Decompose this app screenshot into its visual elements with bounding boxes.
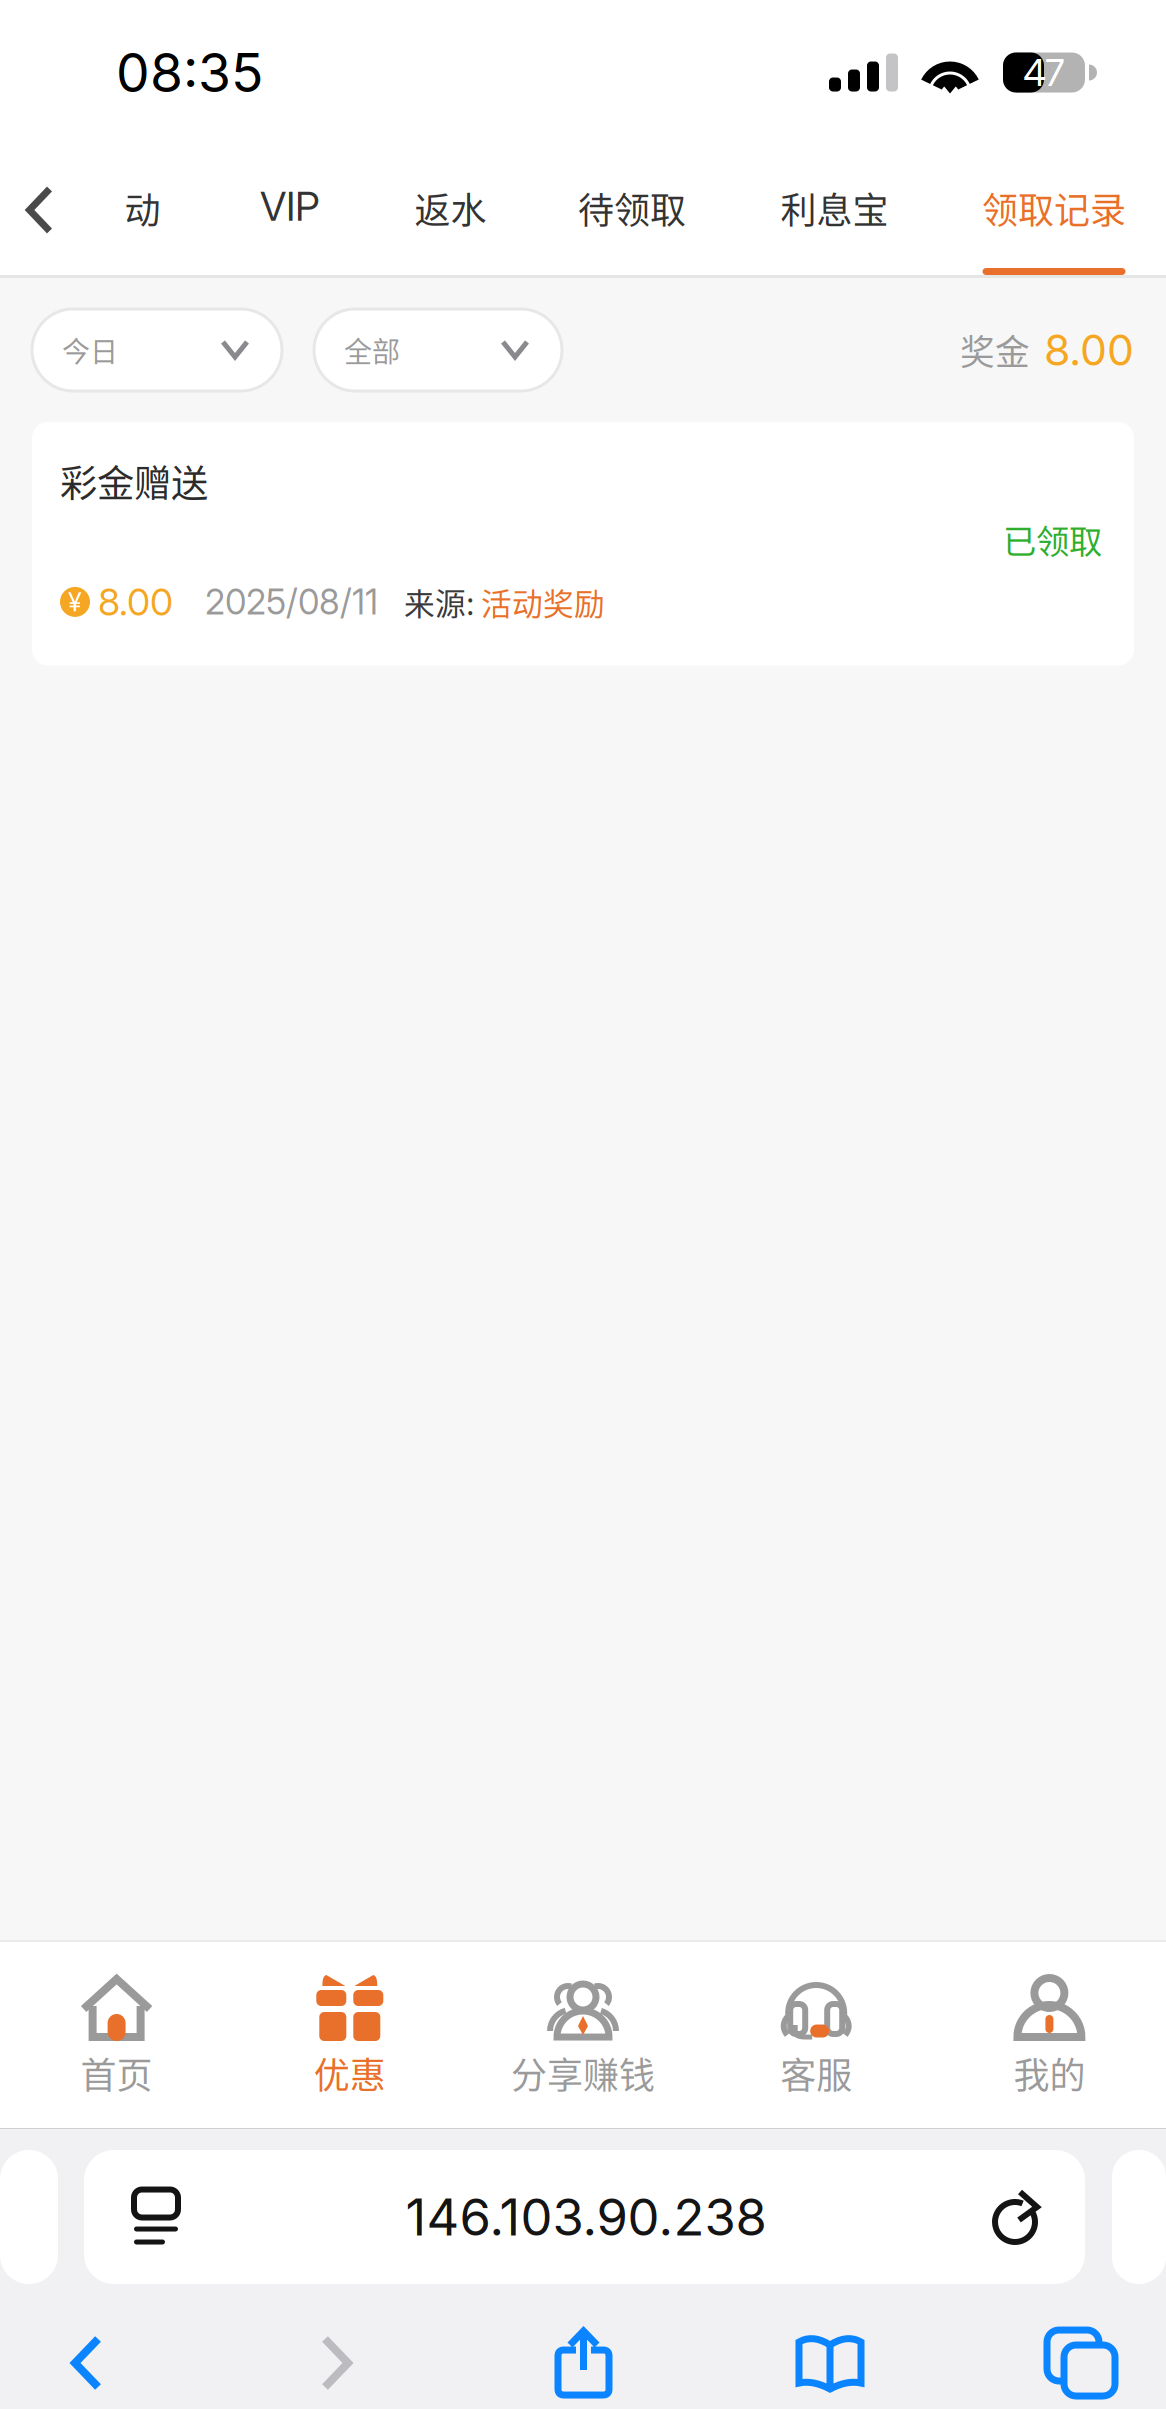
button[interactable]: 分享赚钱 bbox=[466, 1942, 700, 2128]
staticText: 8.00 bbox=[1044, 324, 1134, 376]
staticText: 优惠 bbox=[314, 2047, 386, 2099]
button[interactable]: VIP bbox=[214, 145, 365, 275]
staticText: 返水 bbox=[414, 182, 486, 234]
staticText: 利息宝 bbox=[780, 182, 888, 234]
staticText: 来源: bbox=[404, 580, 475, 624]
staticText: VIP bbox=[260, 182, 320, 230]
button[interactable]: 领取记录 bbox=[940, 145, 1166, 275]
staticText: 2025/08/11 bbox=[205, 581, 378, 623]
button[interactable]: 利息宝 bbox=[728, 145, 940, 275]
staticText: 动 bbox=[124, 182, 160, 234]
button[interactable]: 客服 bbox=[700, 1942, 933, 2128]
button[interactable]: Back bbox=[0, 2323, 103, 2403]
staticText: 08:35 bbox=[116, 40, 263, 105]
button[interactable]: Share bbox=[353, 2323, 613, 2403]
button[interactable]: 首页 bbox=[0, 1942, 233, 2128]
button[interactable]: Forward bbox=[103, 2323, 353, 2403]
staticText: 8.00 bbox=[98, 579, 173, 624]
staticText: 活动奖励 bbox=[481, 580, 605, 624]
staticText: ¥ bbox=[68, 587, 82, 617]
button[interactable]: Tabs bbox=[865, 2323, 1115, 2403]
button[interactable]: Bookmarks bbox=[613, 2323, 865, 2403]
staticText: 待领取 bbox=[578, 182, 686, 234]
staticText: 已领取 bbox=[1003, 515, 1102, 563]
staticText: 全部 bbox=[344, 330, 400, 370]
button[interactable]: 今日 bbox=[32, 309, 282, 391]
button[interactable]: 待领取 bbox=[535, 145, 728, 275]
button[interactable]: Back bbox=[0, 145, 70, 275]
button[interactable]: 全部 bbox=[314, 309, 562, 391]
staticText: 领取记录 bbox=[982, 182, 1126, 234]
staticText: 146.103.90.238 bbox=[405, 2186, 766, 2248]
staticText: 47 bbox=[1023, 50, 1065, 95]
button[interactable]: 优惠 bbox=[233, 1942, 466, 2128]
button[interactable]: 我的 bbox=[933, 1942, 1166, 2128]
staticText: 客服 bbox=[780, 2047, 852, 2099]
staticText: 我的 bbox=[1013, 2047, 1085, 2099]
button[interactable]: 146.103.90.238 bbox=[84, 2150, 1085, 2284]
button[interactable]: 动 bbox=[70, 145, 214, 275]
staticText: 首页 bbox=[81, 2047, 153, 2099]
staticText: 分享赚钱 bbox=[511, 2047, 655, 2099]
staticText: 彩金赠送 bbox=[60, 454, 208, 508]
staticText: 今日 bbox=[62, 330, 118, 370]
button[interactable]: 返水 bbox=[365, 145, 535, 275]
staticText: 奖金 bbox=[960, 325, 1030, 375]
